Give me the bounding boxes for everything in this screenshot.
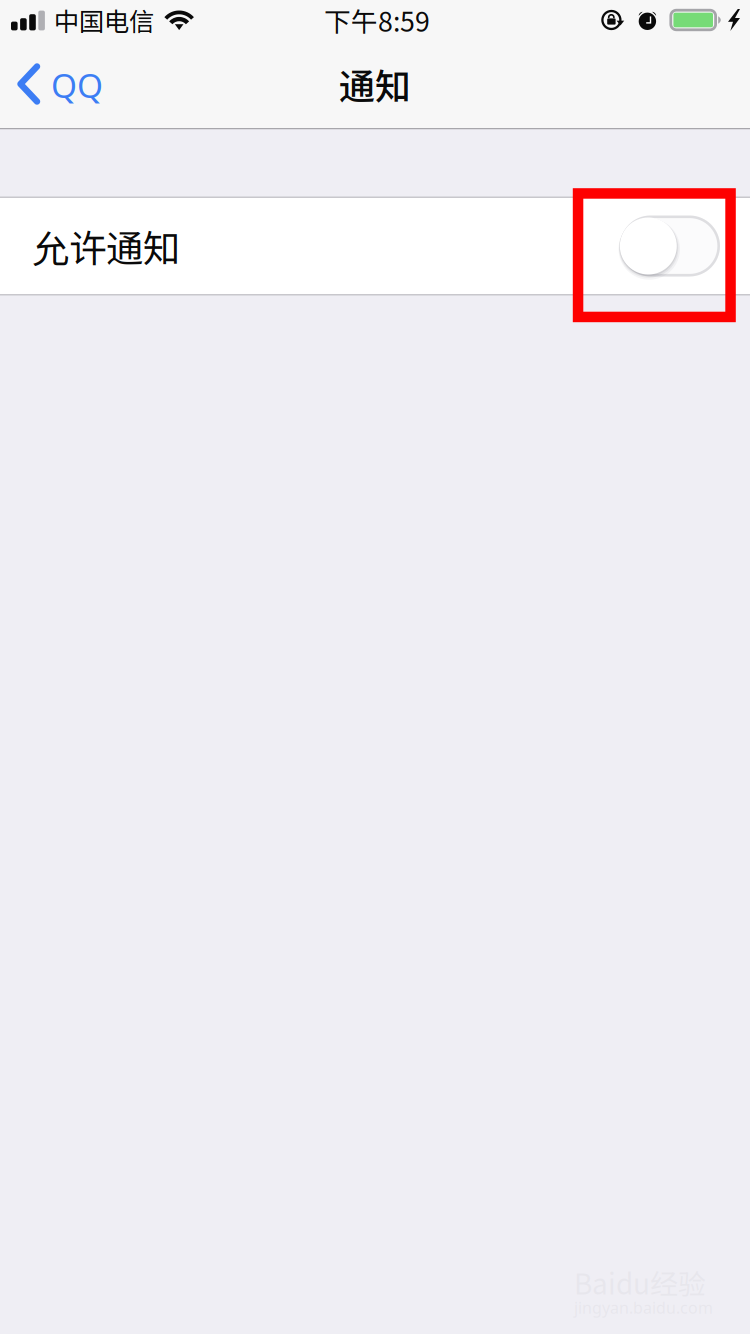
staticText: 通知 xyxy=(339,58,411,110)
staticText: QQ xyxy=(51,62,103,108)
staticText: 允许通知 xyxy=(32,219,180,273)
button[interactable]: 允许通知 xyxy=(620,215,720,276)
staticText: 下午8:59 xyxy=(324,1,430,39)
button[interactable]: QQ xyxy=(0,40,180,128)
staticText: 中国电信 xyxy=(54,2,154,38)
